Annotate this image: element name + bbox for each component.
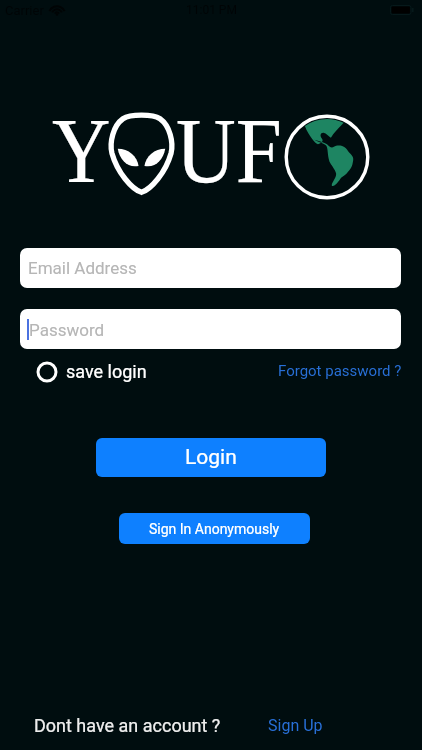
staticText: Sign Up <box>268 716 323 735</box>
staticText: Login <box>185 445 237 470</box>
button[interactable]: Password <box>20 309 401 349</box>
button[interactable]: Sign In Anonymously <box>119 513 310 544</box>
staticText: Email Address <box>28 258 137 278</box>
staticText: Y <box>52 99 111 202</box>
button[interactable]: Login <box>96 438 326 477</box>
staticText: save login <box>66 361 147 382</box>
staticText: Dont have an account ? <box>34 715 221 736</box>
button[interactable]: Forgot password ? <box>278 358 402 384</box>
button[interactable]: save login <box>36 360 147 382</box>
staticText: Forgot password ? <box>278 362 402 380</box>
staticText: UF <box>176 99 282 202</box>
staticText: Password <box>29 320 105 340</box>
button[interactable]: Email Address <box>20 248 401 288</box>
staticText: Sign In Anonymously <box>149 521 280 537</box>
button[interactable]: Sign Up <box>268 711 323 740</box>
